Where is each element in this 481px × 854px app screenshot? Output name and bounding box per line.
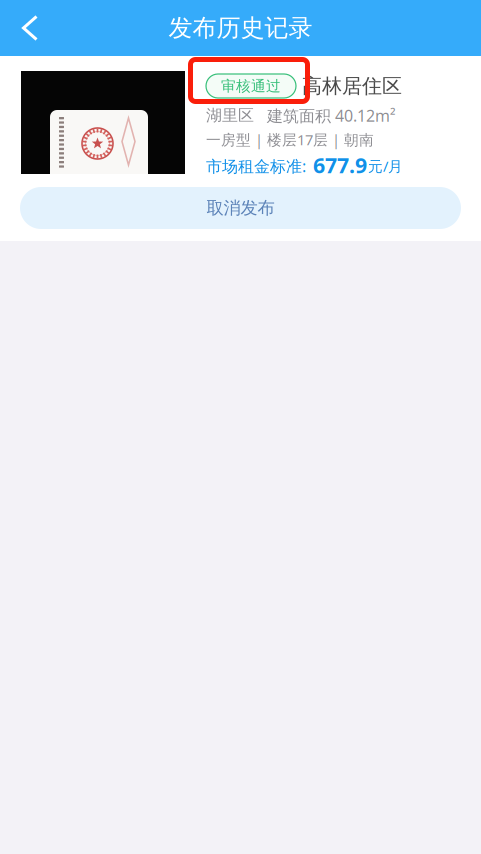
staticText: 市场租金标准:: [206, 155, 306, 177]
staticText: 取消发布: [206, 197, 274, 219]
staticText: 湖里区: [206, 106, 254, 125]
staticText: 元/月: [368, 156, 403, 176]
staticText: 一房型 | 楼层17层 | 朝南: [206, 130, 374, 149]
staticText: 677.9: [313, 151, 367, 179]
staticText: 审核通过: [221, 77, 281, 95]
button[interactable]: Back: [0, 0, 58, 56]
staticText: 高林居住区: [302, 74, 402, 98]
staticText: 发布历史记录: [168, 13, 312, 43]
button[interactable]: 取消发布: [20, 187, 461, 229]
staticText: 建筑面积 40.12m²: [267, 105, 396, 126]
